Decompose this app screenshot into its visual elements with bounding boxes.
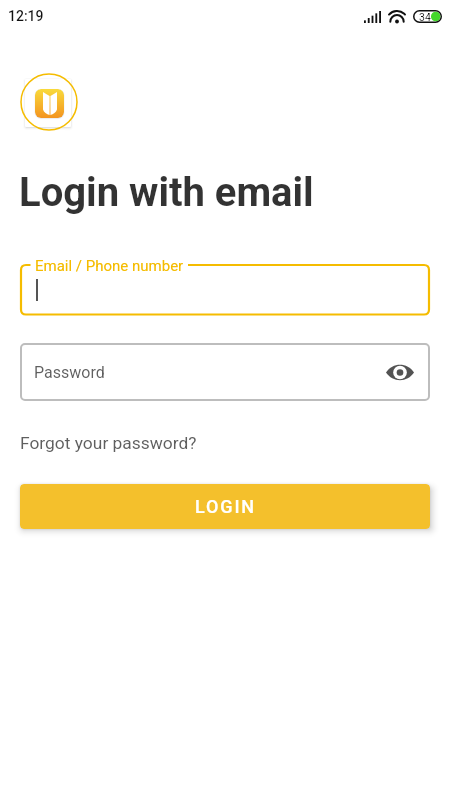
staticText: LOGIN xyxy=(195,496,256,517)
button[interactable]: LOGIN xyxy=(20,484,430,529)
staticText: Email / Phone number xyxy=(35,257,184,275)
button[interactable]: Show password xyxy=(382,354,418,390)
staticText: 34 xyxy=(419,11,431,23)
button[interactable]: Forgot your password? xyxy=(20,433,197,453)
staticText: 12:19 xyxy=(8,8,44,24)
button[interactable]: Email / Phone number xyxy=(20,256,430,323)
staticText: Password xyxy=(34,363,105,382)
staticText: Login with email xyxy=(19,169,314,216)
button[interactable]: Password xyxy=(20,343,430,401)
